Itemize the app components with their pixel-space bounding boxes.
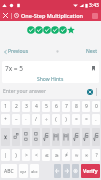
button[interactable]: = [72, 114, 80, 125]
staticText: 3:43 [89, 2, 99, 9]
staticText: ≈ [74, 152, 79, 158]
button[interactable]: 9 [82, 101, 90, 112]
staticText: = [85, 116, 88, 123]
staticText: xyz [20, 169, 27, 174]
button[interactable]: Next [84, 47, 99, 56]
staticText: Show Hints [37, 76, 64, 83]
staticText: 5 [45, 103, 48, 110]
staticText: 7 [65, 103, 68, 110]
button[interactable]: ≠ [62, 149, 70, 161]
staticText: abc [31, 169, 38, 174]
button[interactable]: Logarithm [82, 128, 90, 146]
staticText: . [95, 116, 97, 123]
button[interactable]: abc [30, 164, 39, 178]
button[interactable]: 0 [92, 101, 100, 112]
staticText: 8 [75, 103, 78, 110]
staticText: ÷ [45, 116, 48, 123]
button[interactable]: 2 [12, 101, 20, 112]
button[interactable]: − [12, 114, 20, 125]
button[interactable]: Fraction [22, 128, 30, 146]
staticText: ABC [4, 168, 14, 175]
staticText: 7x = 5 [5, 64, 23, 73]
button[interactable]: Absolute [52, 128, 60, 146]
button[interactable]: < [32, 149, 40, 161]
button[interactable]: Square root [42, 128, 50, 146]
button[interactable]: 6 [52, 101, 60, 112]
staticText: ≤ [44, 152, 49, 158]
button[interactable]: ≈ [72, 149, 80, 161]
staticText: 0 [95, 103, 98, 110]
button[interactable]: 7 [62, 101, 70, 112]
button[interactable]: Exercise complete [35, 26, 43, 34]
staticText: 9 [85, 103, 88, 110]
button[interactable]: Clear [86, 88, 94, 96]
button[interactable]: Previous [2, 47, 31, 56]
staticText: ? [95, 152, 98, 159]
button[interactable]: ≤ [42, 149, 50, 161]
button[interactable]: Power [12, 128, 20, 146]
button[interactable]: | [1, 149, 10, 161]
staticText: ) [65, 116, 67, 123]
staticText: ) [15, 152, 17, 159]
staticText: One-Step Multiplication [21, 12, 84, 19]
button[interactable]: Move left [54, 164, 61, 178]
button[interactable]: Fraction [32, 128, 40, 146]
button[interactable]: . [92, 114, 100, 125]
button[interactable]: ABC [1, 164, 17, 178]
button[interactable]: ≥ [52, 149, 60, 161]
button[interactable]: Exercise complete [51, 26, 59, 34]
staticText: 4 [35, 103, 38, 110]
staticText: 6 [55, 103, 58, 110]
button[interactable]: 3 [22, 101, 30, 112]
button[interactable]: ? [92, 149, 100, 161]
staticText: Verify [83, 168, 98, 175]
staticText: > [25, 152, 28, 159]
button[interactable]: Verify [81, 164, 100, 178]
button[interactable]: Bookmark [88, 63, 98, 73]
button[interactable]: Show Hints [2, 75, 99, 83]
staticText: · [25, 116, 27, 123]
button[interactable]: 8 [72, 101, 80, 112]
staticText: / [35, 116, 37, 123]
button[interactable]: Exercise complete [43, 26, 51, 34]
button[interactable]: Backspace [72, 164, 79, 178]
button[interactable]: = [82, 114, 90, 125]
button[interactable]: Close [0, 10, 11, 21]
staticText: Next [86, 48, 97, 55]
button[interactable]: xyz [19, 164, 28, 178]
button[interactable]: 5 [42, 101, 50, 112]
button[interactable]: > [22, 149, 30, 161]
button[interactable]: Exercise complete [27, 26, 35, 34]
staticText: Previous [8, 48, 29, 55]
button[interactable]: ( [52, 114, 60, 125]
staticText: + [4, 116, 7, 123]
staticText: 3 [25, 103, 28, 110]
staticText: < [35, 152, 38, 159]
staticText: Enter your answer [3, 88, 46, 95]
staticText: ≥ [54, 152, 59, 158]
button[interactable]: 1 [1, 101, 10, 112]
button[interactable]: ) [62, 114, 70, 125]
button[interactable]: Calculator [89, 10, 100, 21]
button[interactable]: Root [92, 128, 100, 146]
button[interactable]: ÷ [42, 114, 50, 125]
staticText: 1 [4, 103, 7, 110]
button[interactable]: Variable x [1, 128, 10, 146]
button[interactable]: Natural log [72, 128, 80, 146]
staticText: − [15, 116, 18, 123]
button[interactable]: Mastery [67, 26, 75, 34]
staticText: = [75, 116, 78, 123]
staticText: ∞ [84, 152, 89, 158]
button[interactable]: 4 [32, 101, 40, 112]
button[interactable]: / [32, 114, 40, 125]
button[interactable]: Exercise complete [59, 26, 67, 34]
button[interactable]: ∞ [82, 149, 90, 161]
button[interactable]: Move right [63, 164, 70, 178]
button[interactable]: ) [12, 149, 20, 161]
button[interactable]: + [1, 114, 10, 125]
staticText: ≠ [65, 152, 68, 159]
button[interactable]: · [22, 114, 30, 125]
staticText: ( [55, 116, 57, 123]
button[interactable]: Absolute [62, 128, 70, 146]
staticText: 2 [15, 103, 18, 110]
